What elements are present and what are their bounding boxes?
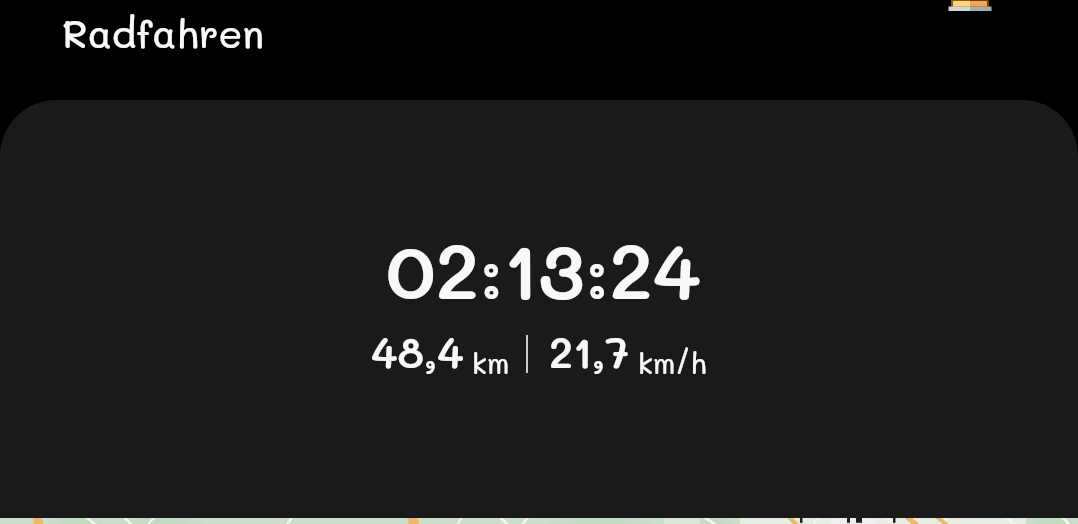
button[interactable]: Karte (0, 518, 1078, 524)
staticText: km/h (638, 345, 707, 381)
staticText: 21,7 (549, 323, 630, 379)
button[interactable]: Radfahren (62, 7, 265, 58)
button[interactable]: 02:13:24 (0, 100, 1078, 518)
button[interactable]: Abzeichen (944, 0, 996, 14)
staticText: 48,4 (371, 323, 464, 379)
staticText: km (472, 345, 510, 381)
staticText: 02:13:24 (386, 218, 701, 319)
